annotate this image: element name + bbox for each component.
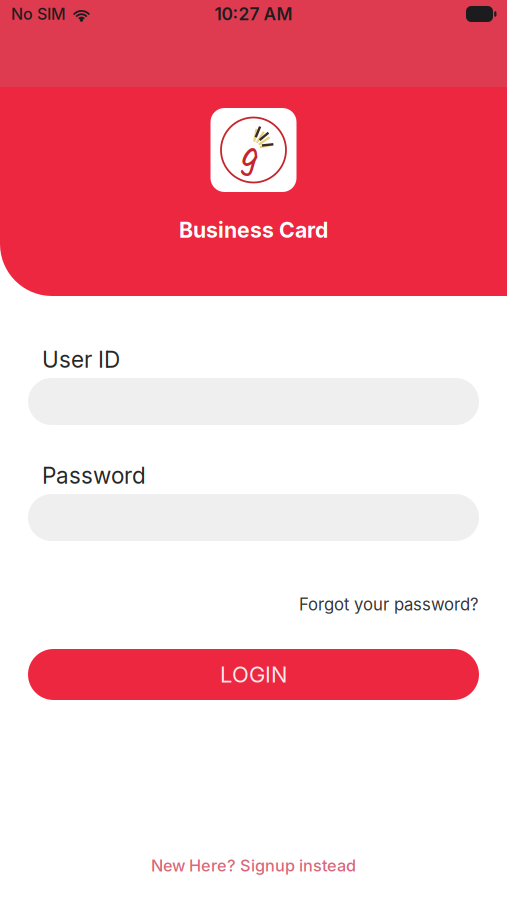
button[interactable]: New Here? Signup instead — [151, 857, 356, 874]
staticText: Password — [42, 462, 146, 489]
staticText: Forgot your password? — [299, 594, 479, 615]
staticText: 10:27 AM — [214, 3, 292, 24]
staticText: g — [241, 127, 259, 187]
staticText: No SIM — [11, 4, 66, 24]
button[interactable]: Forgot your password? — [299, 596, 479, 613]
staticText: New Here? Signup instead — [151, 856, 356, 875]
staticText: User ID — [42, 346, 120, 373]
staticText: LOGIN — [220, 661, 287, 688]
button[interactable]: LOGIN — [28, 649, 479, 700]
staticText: Business Card — [179, 217, 328, 243]
